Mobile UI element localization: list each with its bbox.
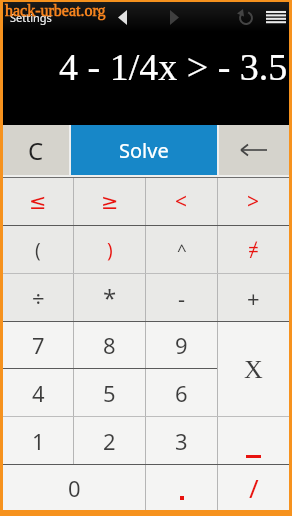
button[interactable] xyxy=(219,125,289,175)
button[interactable]: ) xyxy=(74,226,145,273)
button[interactable]: ( xyxy=(3,226,73,273)
staticText: ÷ xyxy=(32,283,45,313)
staticText: - xyxy=(178,283,186,313)
staticText: Settings xyxy=(10,10,52,25)
staticText: 5 xyxy=(103,378,116,408)
button[interactable] xyxy=(261,2,289,32)
button[interactable]: 5 xyxy=(74,369,145,416)
staticText: 8 xyxy=(103,330,116,360)
staticText: / xyxy=(249,470,259,505)
button[interactable]: ≠ xyxy=(218,226,289,273)
button[interactable]: ≥ xyxy=(74,178,145,225)
staticText: 6 xyxy=(175,378,188,408)
button[interactable]: 0 xyxy=(3,465,145,510)
staticText: * xyxy=(103,281,117,314)
staticText: ^ xyxy=(177,238,187,261)
staticText: + xyxy=(247,283,260,313)
staticText: C xyxy=(28,134,44,167)
button[interactable]: Solve xyxy=(71,125,217,175)
staticText: Solve xyxy=(119,137,169,164)
button[interactable] xyxy=(218,417,289,464)
button[interactable]: 2 xyxy=(74,417,145,464)
button[interactable]: 7 xyxy=(3,322,73,368)
button[interactable]: - xyxy=(146,274,217,321)
staticText: 4 xyxy=(32,378,45,408)
button[interactable] xyxy=(163,2,191,32)
staticText: 4 - 1/4x > - 3.5 xyxy=(59,46,288,88)
button[interactable]: 9 xyxy=(146,322,217,368)
button[interactable]: ^ xyxy=(146,226,217,273)
button[interactable]: * xyxy=(74,274,145,321)
button[interactable] xyxy=(233,2,261,32)
button[interactable]: 1 xyxy=(3,417,73,464)
staticText: hack-urbeat.org xyxy=(5,2,106,20)
button[interactable]: 4 xyxy=(3,369,73,416)
button[interactable] xyxy=(146,465,217,510)
button[interactable] xyxy=(111,2,139,32)
staticText: 2 xyxy=(103,426,116,456)
staticText: ≠ xyxy=(248,237,259,263)
button[interactable]: < xyxy=(146,178,217,225)
button[interactable]: + xyxy=(218,274,289,321)
button[interactable]: 6 xyxy=(146,369,217,416)
staticText: 3 xyxy=(175,426,188,456)
staticText: X xyxy=(244,355,263,384)
button[interactable]: / xyxy=(218,465,289,510)
staticText: ≤ xyxy=(29,190,47,214)
button[interactable]: X xyxy=(218,322,289,416)
button[interactable]: C xyxy=(3,125,69,175)
staticText: < xyxy=(175,187,188,216)
button[interactable]: ≤ xyxy=(3,178,73,225)
staticText: 7 xyxy=(32,330,45,360)
button[interactable]: 3 xyxy=(146,417,217,464)
button[interactable]: ÷ xyxy=(3,274,73,321)
staticText: 1 xyxy=(32,426,45,456)
staticText: 9 xyxy=(175,330,188,360)
staticText: > xyxy=(247,187,260,216)
staticText: 0 xyxy=(68,473,81,503)
staticText: ( xyxy=(35,237,41,263)
staticText: ) xyxy=(107,237,113,263)
button[interactable]: > xyxy=(218,178,289,225)
button[interactable]: 8 xyxy=(74,322,145,368)
staticText: ≥ xyxy=(101,190,119,214)
